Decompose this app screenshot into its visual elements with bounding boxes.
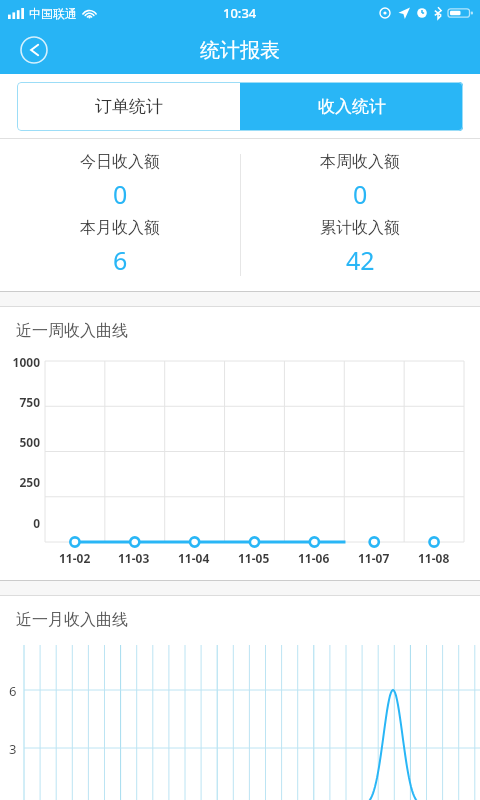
staticText: 中国联通: [29, 6, 77, 21]
staticText: 11-02: [59, 550, 91, 566]
staticText: 10:34: [223, 4, 257, 22]
staticText: 本周收入额: [320, 152, 400, 172]
staticText: 0: [0, 515, 40, 531]
staticText: 订单统计: [95, 96, 163, 117]
staticText: 近一周收入曲线: [16, 321, 128, 341]
staticText: 近一月收入曲线: [16, 610, 128, 630]
staticText: 42: [346, 243, 375, 277]
staticText: 6: [9, 682, 17, 700]
staticText: 1000: [0, 354, 40, 370]
button[interactable]: Back: [12, 28, 56, 72]
staticText: 0: [113, 177, 128, 211]
button[interactable]: 收入统计: [240, 82, 463, 131]
staticText: 今日收入额: [80, 152, 160, 172]
button[interactable]: 订单统计: [17, 82, 240, 131]
staticText: 500: [0, 434, 40, 450]
staticText: 收入统计: [318, 96, 386, 117]
staticText: 11-05: [238, 550, 270, 566]
staticText: 11-03: [118, 550, 150, 566]
staticText: 0: [353, 177, 368, 211]
staticText: 750: [0, 394, 40, 410]
staticText: 3: [9, 740, 17, 758]
staticText: 统计报表: [200, 38, 280, 63]
staticText: 11-06: [298, 550, 330, 566]
staticText: 11-04: [178, 550, 210, 566]
staticText: 6: [113, 243, 128, 277]
staticText: 本月收入额: [80, 218, 160, 238]
staticText: 250: [0, 474, 40, 490]
staticText: 累计收入额: [320, 218, 400, 238]
staticText: 11-08: [418, 550, 450, 566]
staticText: 11-07: [358, 550, 390, 566]
